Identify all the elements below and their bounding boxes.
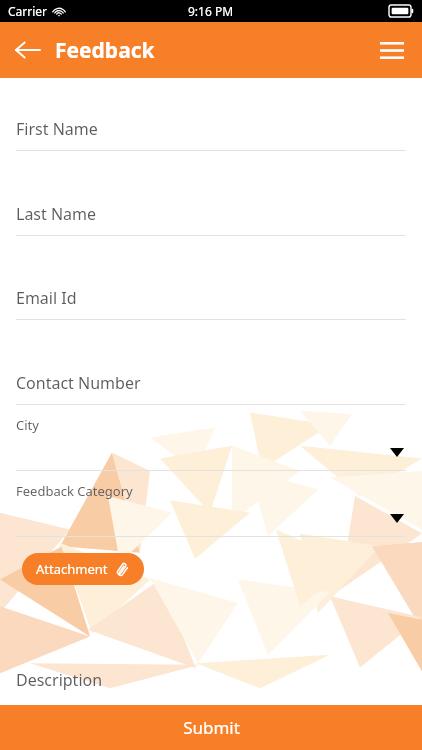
button[interactable]: Submit <box>0 705 422 750</box>
staticText: Attachment <box>36 560 108 578</box>
staticText: Email Id <box>16 287 77 309</box>
button[interactable]: Menu <box>370 28 414 72</box>
staticText: City <box>16 416 39 434</box>
staticText: Feedback Category <box>16 482 133 500</box>
staticText: Last Name <box>16 203 97 225</box>
staticText: Feedback <box>55 36 155 65</box>
staticText: Description <box>16 669 103 691</box>
button[interactable]: First Name <box>0 118 422 151</box>
button[interactable]: City <box>0 416 422 471</box>
button[interactable]: Feedback Category <box>0 482 422 537</box>
staticText: Contact Number <box>16 372 141 394</box>
staticText: First Name <box>16 118 98 140</box>
button[interactable]: Last Name <box>0 203 422 236</box>
button[interactable]: Email Id <box>0 287 422 320</box>
button[interactable]: Contact Number <box>0 372 422 405</box>
staticText: Submit <box>183 716 240 739</box>
staticText: Carrier <box>8 3 48 19</box>
button[interactable]: Back <box>6 28 50 72</box>
button[interactable]: Attachment <box>22 553 144 585</box>
staticText: 9:16 PM <box>188 3 234 19</box>
